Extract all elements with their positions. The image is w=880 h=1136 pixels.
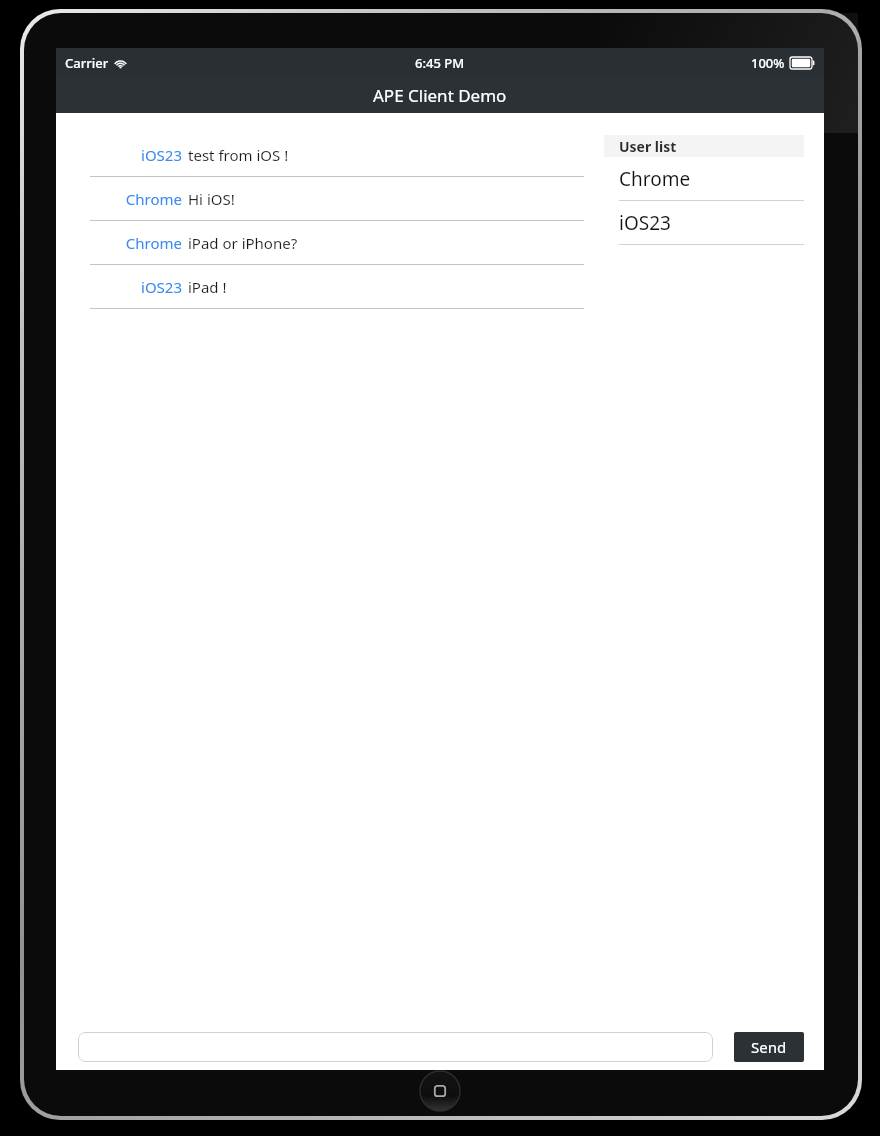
staticText: iOS23	[90, 277, 182, 297]
staticText: Chrome	[90, 233, 182, 253]
staticText: iPad or iPhone?	[188, 233, 298, 253]
staticText: Chrome	[90, 189, 182, 209]
button[interactable]: iOS23	[56, 133, 604, 177]
staticText: iOS23	[619, 210, 671, 236]
staticText: iPad !	[188, 277, 227, 297]
staticText: User list	[619, 137, 677, 156]
button[interactable]: Send	[734, 1032, 804, 1062]
button[interactable]: Message input	[78, 1032, 713, 1062]
staticText: Carrier	[65, 54, 109, 72]
staticText: Hi iOS!	[188, 189, 235, 209]
button[interactable]: Chrome	[604, 157, 804, 201]
button[interactable]: iOS23	[604, 201, 804, 245]
staticText: iOS23	[90, 145, 182, 165]
button[interactable]: Chrome	[56, 177, 604, 221]
staticText: Chrome	[619, 166, 691, 192]
staticText: APE Client Demo	[373, 84, 507, 107]
button[interactable]: iOS23	[56, 265, 604, 309]
button[interactable]: Home	[418, 1069, 462, 1113]
staticText: 100%	[751, 54, 785, 72]
staticText: Send	[751, 1037, 787, 1057]
staticText: test from iOS !	[188, 145, 289, 165]
button[interactable]: Chrome	[56, 221, 604, 265]
staticText: 6:45 PM	[415, 54, 465, 72]
